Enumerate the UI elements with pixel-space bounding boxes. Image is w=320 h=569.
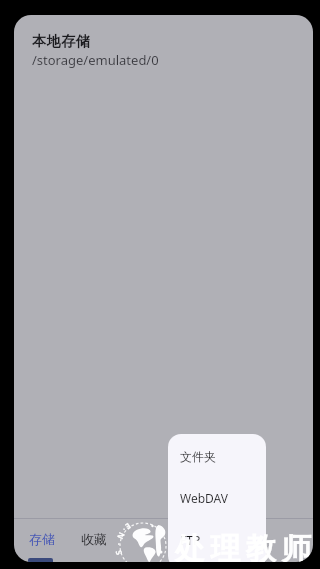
staticText: E bbox=[124, 522, 133, 533]
staticText: 存储 bbox=[29, 531, 55, 547]
staticText: N bbox=[116, 531, 128, 542]
staticText: 收藏 bbox=[81, 531, 107, 547]
staticText: WebDAV bbox=[180, 490, 228, 506]
button[interactable]: FTP bbox=[168, 519, 266, 561]
staticText: /storage/emulated/0 bbox=[32, 51, 159, 69]
staticText: · bbox=[115, 543, 125, 546]
staticText: 处理教师 bbox=[172, 530, 313, 562]
button[interactable]: 收藏 bbox=[68, 519, 120, 562]
staticText: 本地存储 bbox=[32, 33, 90, 51]
staticText: · bbox=[120, 526, 129, 535]
staticText: FTP bbox=[180, 532, 201, 548]
button[interactable]: 文件夹 bbox=[168, 435, 266, 477]
button[interactable]: 存储 bbox=[16, 519, 68, 562]
button[interactable]: 本地存储 bbox=[32, 33, 90, 51]
staticText: S bbox=[115, 549, 126, 556]
staticText: 文件夹 bbox=[180, 449, 216, 464]
button[interactable]: WebDAV bbox=[168, 477, 266, 519]
